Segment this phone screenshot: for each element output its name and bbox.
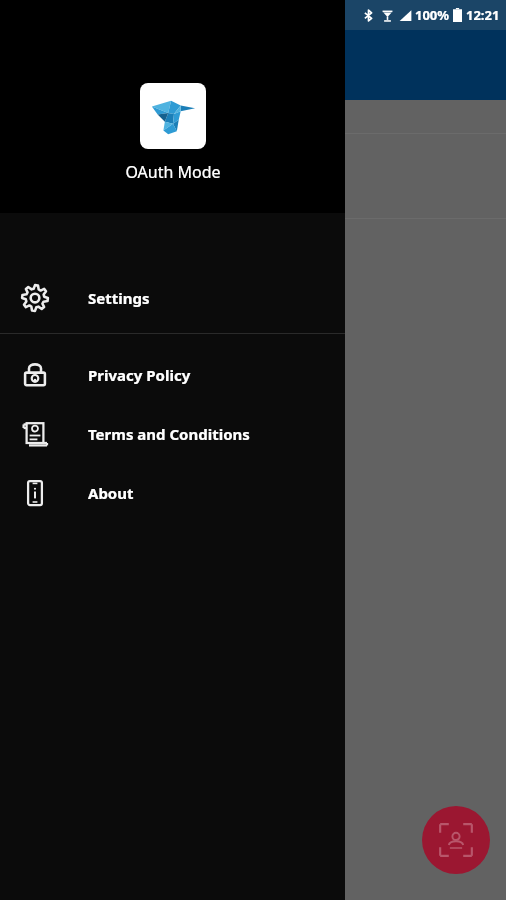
button[interactable]: Settings: [0, 268, 345, 327]
button[interactable]: Privacy Policy: [0, 345, 345, 404]
staticText: Privacy Policy: [88, 365, 191, 385]
staticText: Terms and Conditions: [88, 424, 250, 444]
button[interactable]: Terms and Conditions: [0, 404, 345, 463]
button[interactable]: About: [0, 463, 345, 522]
staticText: 12:21: [466, 6, 500, 24]
staticText: 100%: [415, 6, 450, 24]
button[interactable]: Face scan: [422, 806, 490, 874]
staticText: Settings: [88, 288, 150, 308]
button[interactable]: OAuth Mode: [0, 0, 345, 213]
staticText: OAuth Mode: [125, 161, 221, 183]
staticText: About: [88, 483, 134, 503]
